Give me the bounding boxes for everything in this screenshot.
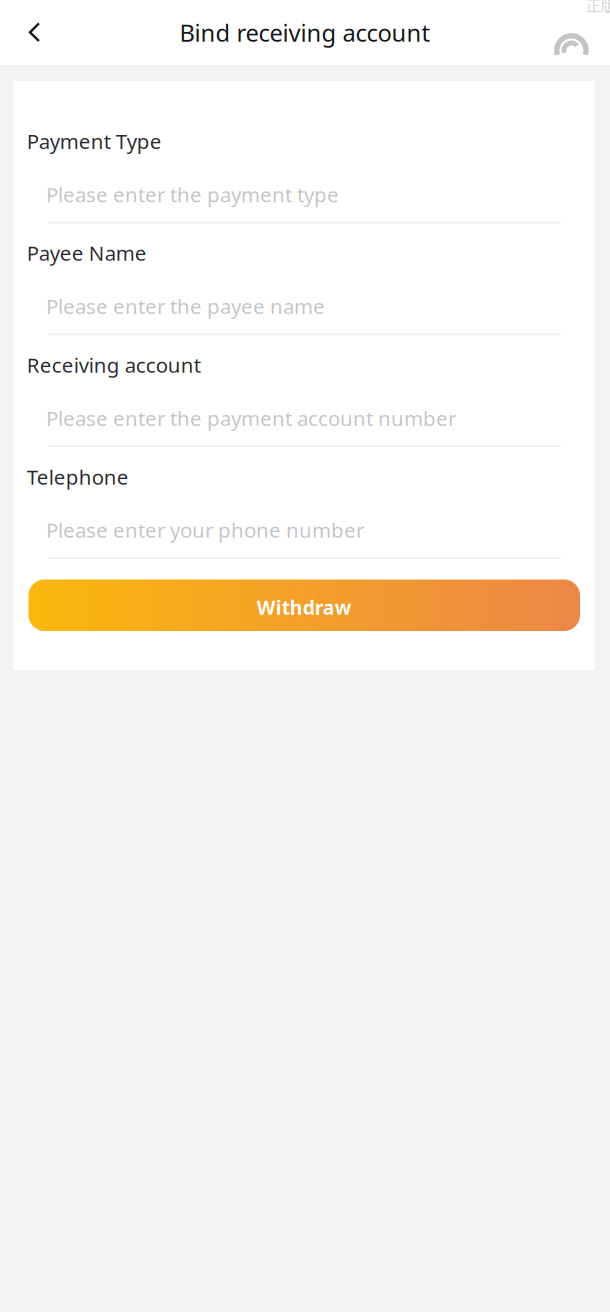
staticText: 正版 [586, 0, 610, 16]
button[interactable]: Back [0, 0, 54, 65]
staticText: Payee Name [27, 239, 147, 266]
staticText: Receiving account [27, 351, 201, 378]
button[interactable]: Withdraw [28, 579, 580, 631]
staticText: Withdraw [257, 594, 352, 620]
staticText: Please enter the payee name [46, 293, 325, 320]
staticText: Please enter the payment account number [46, 404, 456, 432]
button[interactable]: Payee Name [13, 240, 595, 352]
button[interactable]: Telephone [13, 464, 595, 576]
button[interactable]: Payment Type [13, 128, 595, 240]
staticText: Payment Type [27, 127, 162, 155]
staticText: Telephone [27, 463, 129, 490]
button[interactable]: Receiving account [13, 352, 595, 464]
staticText: Please enter the payment type [46, 181, 339, 208]
staticText: Bind receiving account [179, 17, 430, 48]
staticText: Please enter your phone number [46, 516, 364, 543]
